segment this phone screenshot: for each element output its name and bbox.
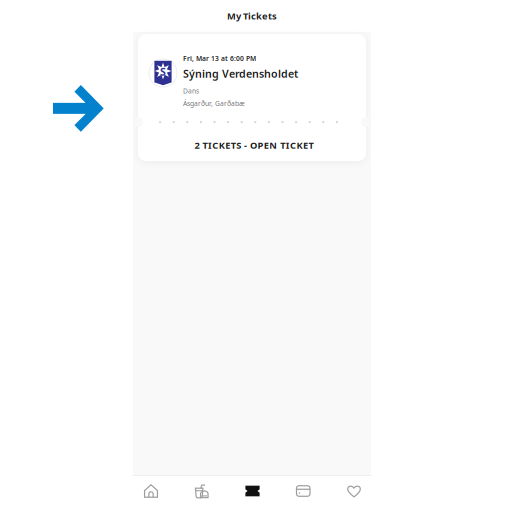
button[interactable]: Home <box>126 476 176 506</box>
staticText: Sýning Verdensholdet <box>183 66 298 81</box>
button[interactable]: Wallet <box>278 476 329 506</box>
button[interactable]: My Tickets <box>227 476 278 506</box>
staticText: S <box>160 64 166 79</box>
button[interactable]: Food and drink <box>176 476 227 506</box>
staticText: Fri, Mar 13 at 6:00 PM <box>183 54 256 63</box>
staticText: Ásgarður, Garðabæ <box>183 99 245 108</box>
button[interactable]: S <box>138 34 366 161</box>
staticText: 2 TICKETS - OPEN TICKET <box>194 139 313 151</box>
staticText: My Tickets <box>227 10 277 22</box>
staticText: Dans <box>183 86 199 95</box>
button[interactable]: Favourites <box>329 476 379 506</box>
